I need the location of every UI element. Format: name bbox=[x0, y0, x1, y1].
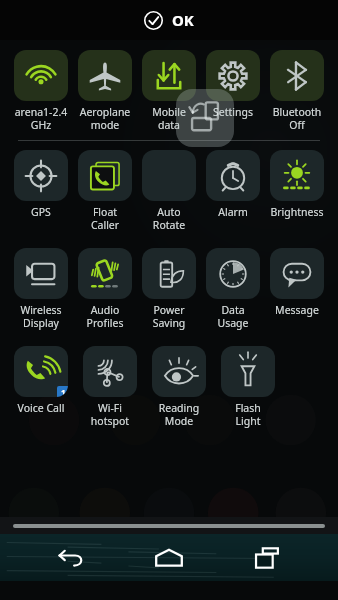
button[interactable]: arena1-2.4 GHz bbox=[10, 50, 72, 132]
staticText: Mobile data bbox=[138, 105, 200, 132]
staticText: Voice Call bbox=[10, 401, 72, 415]
button[interactable]: Message bbox=[266, 248, 328, 317]
button[interactable]: Home bbox=[141, 534, 197, 581]
button[interactable] bbox=[0, 517, 338, 534]
staticText: Wi-Fi hotspot bbox=[79, 401, 141, 428]
staticText: Message bbox=[266, 303, 328, 317]
staticText: Float Caller bbox=[74, 205, 136, 232]
staticText: Reading Mode bbox=[148, 401, 210, 428]
staticText: OK bbox=[172, 10, 194, 30]
button[interactable]: Brightness bbox=[266, 150, 328, 219]
button[interactable]: GPS bbox=[10, 150, 72, 219]
staticText: Flash Light bbox=[217, 401, 279, 428]
button[interactable]: Float Caller bbox=[74, 150, 136, 232]
button[interactable]: Auto Rotate bbox=[138, 150, 200, 232]
staticText: Wireless Display bbox=[10, 303, 72, 330]
button[interactable]: Back bbox=[43, 534, 99, 581]
button[interactable]: Alarm bbox=[202, 150, 264, 219]
staticText: Data Usage bbox=[202, 303, 264, 330]
staticText: Alarm bbox=[202, 205, 264, 219]
staticText: Aeroplane mode bbox=[74, 105, 136, 132]
staticText: Audio Profiles bbox=[74, 303, 136, 330]
staticText: GPS bbox=[10, 205, 72, 219]
button[interactable]: Flash Light bbox=[217, 346, 279, 428]
staticText: Settings bbox=[202, 105, 264, 119]
button[interactable]: Settings bbox=[202, 50, 264, 119]
button[interactable]: Mobile data bbox=[138, 50, 200, 132]
button[interactable]: Data Usage bbox=[202, 248, 264, 330]
button[interactable]: Wi-Fi hotspot bbox=[79, 346, 141, 428]
staticText: arena1-2.4 GHz bbox=[10, 105, 72, 132]
button[interactable]: Power Saving bbox=[138, 248, 200, 330]
button[interactable]: Recent apps bbox=[240, 534, 296, 581]
button[interactable]: Wireless Display bbox=[10, 248, 72, 330]
button[interactable]: OK bbox=[0, 0, 338, 40]
button[interactable]: Reading Mode bbox=[148, 346, 210, 428]
staticText: Auto Rotate bbox=[138, 205, 200, 232]
button[interactable]: Audio Profiles bbox=[74, 248, 136, 330]
button[interactable]: 1 bbox=[10, 346, 72, 415]
staticText: Brightness bbox=[266, 205, 328, 219]
staticText: Power Saving bbox=[138, 303, 200, 330]
staticText: 1 bbox=[61, 387, 66, 397]
button[interactable]: Bluetooth Off bbox=[266, 50, 328, 132]
button[interactable]: Aeroplane mode bbox=[74, 50, 136, 132]
staticText: Bluetooth Off bbox=[266, 105, 328, 132]
